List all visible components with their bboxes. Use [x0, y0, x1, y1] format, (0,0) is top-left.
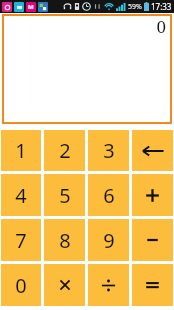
staticText: 8 — [59, 227, 71, 254]
button[interactable]: 0 — [1, 264, 41, 306]
button[interactable]: Backspace — [132, 130, 173, 171]
staticText: 4 — [15, 182, 27, 209]
staticText: 2 — [59, 137, 71, 164]
button[interactable]: 1 — [1, 130, 41, 171]
staticText: 7 — [15, 227, 27, 254]
button[interactable]: Divide — [88, 264, 129, 306]
button[interactable]: Equals — [132, 264, 173, 306]
staticText: M — [28, 3, 34, 11]
button[interactable]: Minus — [132, 219, 173, 261]
button[interactable]: 6 — [88, 174, 129, 216]
staticText: 1 — [15, 137, 27, 164]
button[interactable]: 7 — [1, 219, 41, 261]
button[interactable]: 9 — [88, 219, 129, 261]
button[interactable]: 3 — [88, 130, 129, 171]
button[interactable]: 5 — [44, 174, 85, 216]
staticText: 17:33 — [151, 1, 172, 12]
staticText: 0 — [156, 15, 166, 38]
button[interactable]: 4 — [1, 174, 41, 216]
button[interactable]: 2 — [44, 130, 85, 171]
button[interactable]: Multiply — [44, 264, 85, 306]
staticText: 3 — [103, 137, 115, 164]
button[interactable]: 8 — [44, 219, 85, 261]
staticText: 5 — [59, 182, 71, 209]
button[interactable]: Plus — [132, 174, 173, 216]
button[interactable]: 0 — [2, 14, 172, 124]
staticText: 59% — [128, 2, 142, 12]
staticText: 9 — [103, 227, 115, 254]
staticText: 6 — [103, 182, 115, 209]
staticText: 0 — [15, 272, 27, 299]
